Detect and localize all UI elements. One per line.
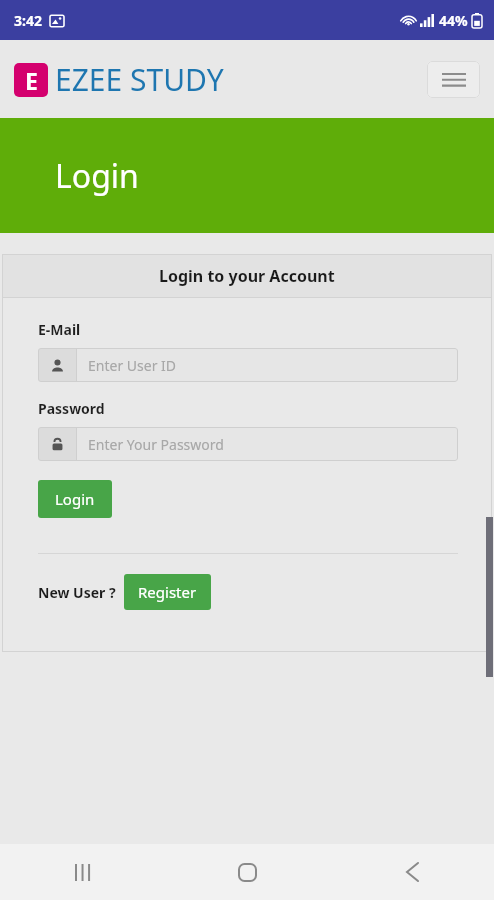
button[interactable]: Enter Your Password (38, 427, 458, 461)
staticText: Login (55, 154, 139, 198)
staticText: Enter User ID (88, 356, 177, 375)
button[interactable]: Enter User ID (38, 348, 458, 382)
staticText: New User ? (38, 583, 116, 602)
staticText: 44% (439, 11, 468, 30)
staticText: 3:42 (14, 11, 42, 30)
staticText: E-Mail (38, 320, 81, 339)
button[interactable]: Back (384, 844, 440, 900)
button[interactable]: E (14, 59, 224, 100)
staticText: E (25, 65, 38, 96)
button[interactable]: Recent apps (54, 844, 110, 900)
staticText: Login to your Account (159, 265, 335, 287)
button[interactable]: Register (124, 574, 211, 610)
staticText: Password (38, 399, 105, 418)
staticText: Login (55, 489, 95, 509)
button[interactable]: Login (38, 480, 112, 518)
staticText: Register (138, 582, 197, 602)
button[interactable]: Home (219, 844, 275, 900)
staticText: Enter Your Password (88, 435, 224, 454)
button[interactable]: Open navigation menu (427, 61, 480, 98)
staticText: EZEE STUDY (55, 59, 224, 100)
